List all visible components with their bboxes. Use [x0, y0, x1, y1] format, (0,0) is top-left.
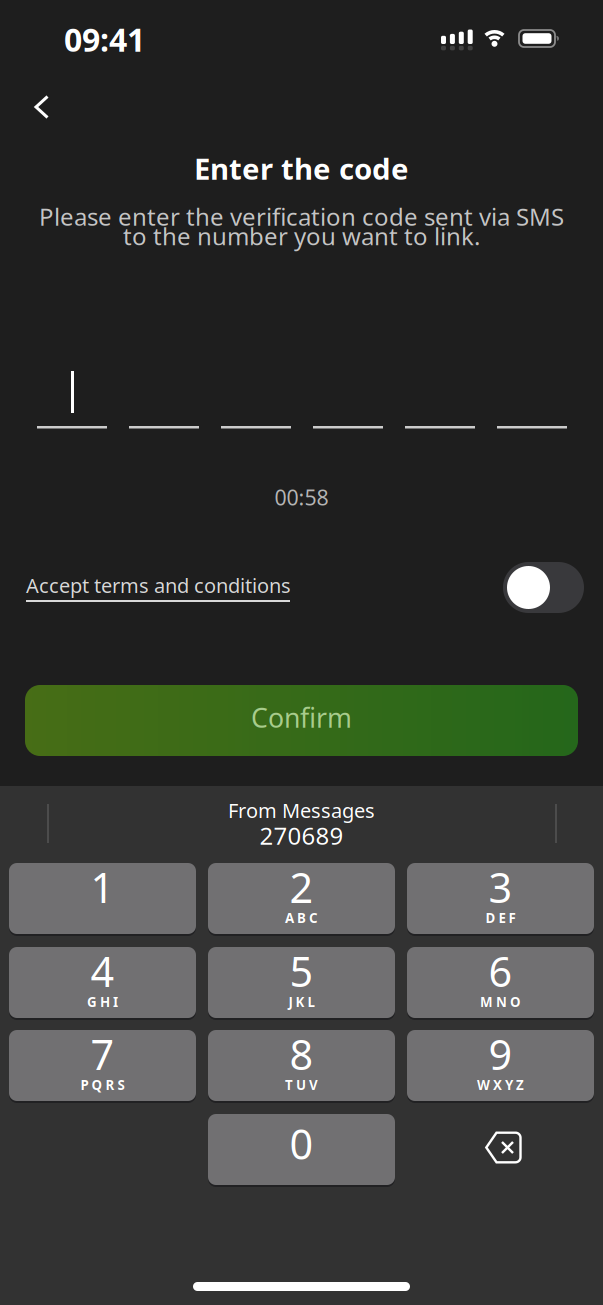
staticText: 4: [90, 943, 114, 998]
staticText: ABC: [285, 909, 318, 927]
button[interactable]: 0: [208, 1114, 395, 1187]
staticText: 7: [90, 1026, 114, 1081]
staticText: to the number you want to link.: [123, 220, 480, 252]
button[interactable]: Delete: [407, 1114, 594, 1185]
staticText: 2: [289, 859, 313, 914]
button[interactable]: 2: [208, 863, 395, 936]
button[interactable]: Confirm: [25, 685, 578, 756]
staticText: 0: [289, 1116, 313, 1171]
staticText: WXYZ: [477, 1076, 524, 1094]
button[interactable]: Use code 270689 from Messages: [151, 795, 451, 851]
staticText: DEF: [485, 909, 515, 927]
staticText: From Messages: [228, 797, 375, 824]
staticText: 1: [90, 859, 114, 914]
staticText: Confirm: [251, 700, 352, 735]
button[interactable]: 9: [407, 1030, 594, 1103]
staticText: PQRS: [80, 1076, 124, 1094]
button[interactable]: 3: [407, 863, 594, 936]
button[interactable]: 7: [9, 1030, 196, 1103]
button[interactable]: Accept terms and conditions: [26, 572, 291, 599]
staticText: TUV: [285, 1076, 318, 1094]
staticText: GHI: [87, 993, 118, 1011]
staticText: 3: [488, 859, 512, 914]
staticText: 09:41: [64, 18, 145, 60]
button[interactable]: 5: [208, 947, 395, 1020]
staticText: 9: [488, 1026, 512, 1081]
staticText: 6: [488, 943, 512, 998]
staticText: 8: [289, 1026, 313, 1081]
button[interactable]: Back: [20, 85, 64, 129]
staticText: Enter the code: [194, 149, 409, 188]
staticText: 270689: [259, 819, 343, 851]
staticText: 5: [289, 943, 313, 998]
button[interactable]: 1: [9, 863, 196, 936]
staticText: Please enter the verification code sent …: [39, 200, 564, 232]
staticText: JKL: [288, 993, 314, 1011]
staticText: Accept terms and conditions: [26, 572, 291, 599]
button[interactable]: 4: [9, 947, 196, 1020]
button[interactable]: 6: [407, 947, 594, 1020]
button[interactable]: Accept terms and conditions toggle: [503, 562, 584, 613]
button[interactable]: 8: [208, 1030, 395, 1103]
staticText: 00:58: [274, 483, 328, 511]
staticText: MNO: [480, 993, 521, 1011]
